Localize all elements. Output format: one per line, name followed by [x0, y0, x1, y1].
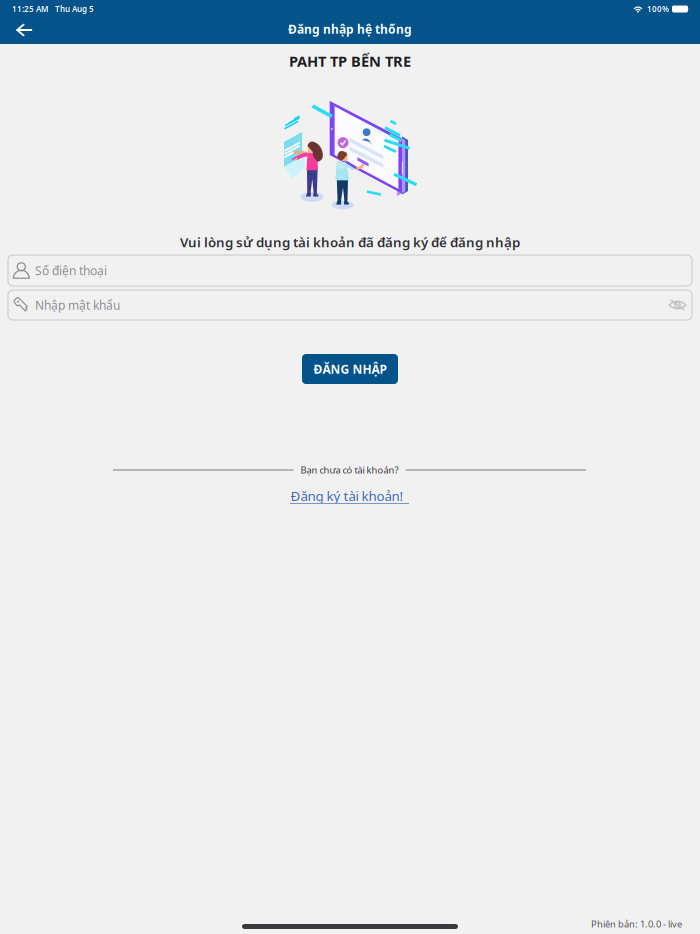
staticText: 11:25 AM	[12, 4, 48, 14]
staticText: Thu Aug 5	[55, 4, 94, 14]
button[interactable]: Back	[3, 17, 43, 43]
staticText: Số điện thoại	[35, 262, 107, 278]
button[interactable]: Show password	[664, 291, 691, 319]
staticText: 100%	[647, 4, 669, 14]
staticText: Bạn chưa có tài khoản?	[300, 464, 398, 476]
staticText: Phiên bản: 1.0.0 - live	[591, 918, 682, 930]
staticText: ĐĂNG NHẬP	[313, 361, 386, 377]
staticText: Đăng nhập hệ thống	[288, 21, 412, 37]
staticText: PAHT TP BẾN TRE	[289, 51, 411, 71]
staticText: Vui lòng sử dụng tài khoản đã đăng ký để…	[180, 233, 520, 251]
button[interactable]: Đăng ký tài khoản!	[290, 486, 410, 506]
staticText: Nhập mật khẩu	[35, 297, 120, 313]
staticText: Đăng ký tài khoản!	[290, 487, 403, 505]
button[interactable]: ĐĂNG NHẬP	[302, 354, 398, 384]
